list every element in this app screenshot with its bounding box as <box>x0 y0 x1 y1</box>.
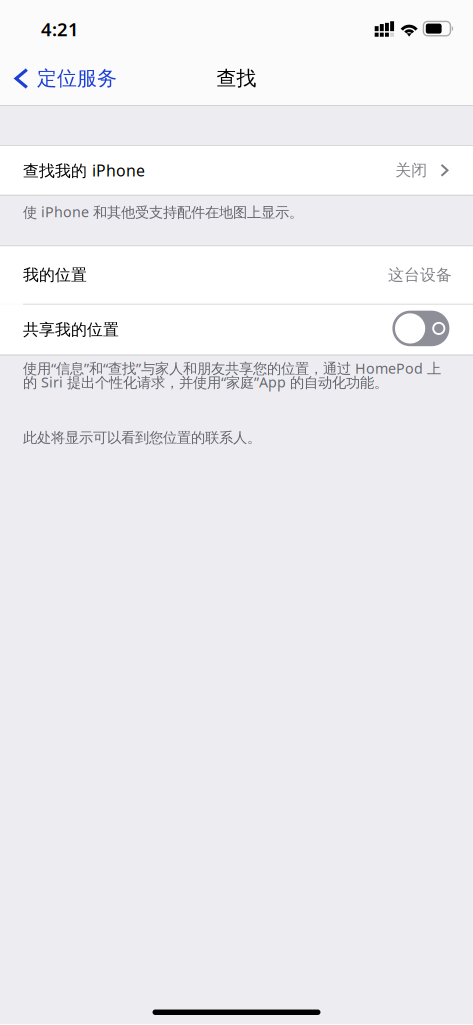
staticText: 我的位置 <box>23 265 87 285</box>
button[interactable]: 共享我的位置 <box>392 312 449 347</box>
staticText: 查找 <box>216 66 256 91</box>
staticText: 关闭 <box>395 160 427 180</box>
staticText: 这台设备 <box>388 265 452 285</box>
staticText: 定位服务 <box>37 66 117 91</box>
staticText: 共享我的位置 <box>23 320 119 340</box>
staticText: 使用“信息”和“查找”与家人和朋友共享您的位置，通过 HomePod 上 <box>23 358 441 378</box>
button[interactable]: 查找我的 iPhone <box>0 146 473 195</box>
staticText: 的 Siri 提出个性化请求，并使用“家庭”App 的自动化功能。 <box>23 372 388 392</box>
staticText: 此处将显示可以看到您位置的联系人。 <box>23 429 261 447</box>
staticText: 使 iPhone 和其他受支持配件在地图上显示。 <box>23 202 303 221</box>
button[interactable]: 定位服务 <box>0 58 127 99</box>
staticText: 查找我的 iPhone <box>23 159 145 181</box>
staticText: 4:21 <box>41 16 79 42</box>
